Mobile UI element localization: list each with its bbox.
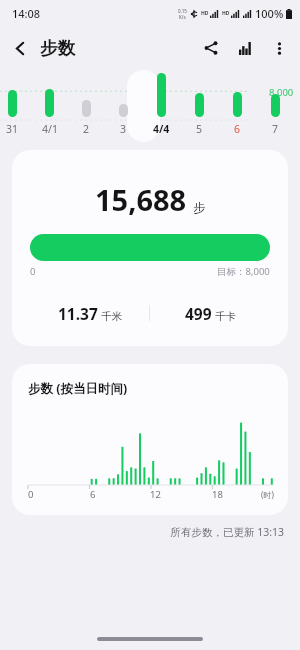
staticText: 步数 bbox=[40, 37, 75, 59]
button[interactable]: 返回 bbox=[0, 28, 40, 68]
staticText: 14:08 bbox=[12, 6, 41, 21]
staticText: 18 bbox=[212, 488, 223, 501]
staticText: 11.37 bbox=[58, 303, 98, 324]
button[interactable]: 5 bbox=[180, 70, 218, 142]
staticText: 31 bbox=[6, 122, 19, 136]
staticText: K/s bbox=[179, 14, 186, 20]
staticText: 0 bbox=[30, 265, 36, 278]
staticText: 499 bbox=[185, 303, 212, 324]
staticText: HD bbox=[222, 10, 230, 17]
staticText: 千卡 bbox=[215, 310, 236, 323]
button[interactable]: 15,688 bbox=[12, 150, 288, 346]
button[interactable]: 4/4 bbox=[142, 70, 180, 142]
button[interactable]: 7 bbox=[256, 70, 294, 142]
staticText: HD bbox=[201, 10, 209, 17]
staticText: 步 bbox=[193, 200, 206, 216]
staticText: 所有步数，已更新 13:13 bbox=[0, 525, 284, 539]
staticText: 4/1 bbox=[42, 122, 58, 136]
staticText: 0.15 bbox=[178, 8, 187, 14]
button[interactable]: 3 bbox=[105, 70, 142, 142]
staticText: 千米 bbox=[101, 310, 122, 323]
staticText: 6 bbox=[234, 122, 241, 136]
staticText: 步数 (按当日时间) bbox=[28, 380, 128, 397]
staticText: 15,688 bbox=[95, 180, 187, 219]
button[interactable]: 31 bbox=[0, 70, 31, 142]
button[interactable]: 分享 bbox=[194, 31, 228, 65]
button[interactable]: 更多选项 bbox=[262, 31, 296, 65]
staticText: 100% bbox=[255, 6, 284, 21]
staticText: (时) bbox=[261, 489, 274, 500]
staticText: 目标：8,000 bbox=[217, 265, 270, 278]
staticText: 5 bbox=[196, 122, 203, 136]
button[interactable]: 2 bbox=[68, 70, 105, 142]
staticText: 8,000 bbox=[269, 86, 294, 99]
staticText: 6 bbox=[90, 488, 96, 501]
staticText: 3 bbox=[120, 122, 127, 136]
button[interactable]: 图表 bbox=[228, 31, 262, 65]
staticText: 12 bbox=[150, 488, 161, 501]
button[interactable]: 6 bbox=[218, 70, 256, 142]
staticText: 7 bbox=[272, 122, 279, 136]
button[interactable]: 步数 (按当日时间) bbox=[12, 364, 288, 515]
staticText: 2 bbox=[83, 122, 90, 136]
button[interactable]: 4/1 bbox=[31, 70, 68, 142]
staticText: 0 bbox=[28, 488, 34, 501]
staticText: 4/4 bbox=[153, 122, 170, 136]
